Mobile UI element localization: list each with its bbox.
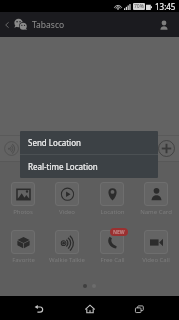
button[interactable]: Back bbox=[27, 297, 51, 320]
button[interactable]: Send Location bbox=[20, 131, 158, 154]
button[interactable]: Voice message bbox=[2, 139, 21, 158]
staticText: Photos bbox=[13, 208, 33, 216]
staticText: Free Call bbox=[100, 256, 125, 264]
staticText: Video bbox=[59, 208, 75, 216]
button[interactable]: Back bbox=[1, 19, 12, 30]
staticText: Tabasco bbox=[32, 19, 65, 31]
staticText: Video Call bbox=[142, 256, 170, 264]
button[interactable]: Video Call bbox=[134, 230, 178, 264]
button[interactable]: Location bbox=[90, 182, 134, 216]
button[interactable]: Favorite bbox=[1, 230, 45, 264]
button[interactable]: Real-time Location bbox=[20, 155, 158, 178]
button[interactable]: Walkie Talkie bbox=[45, 230, 89, 264]
button[interactable]: Contact avatar bbox=[12, 16, 29, 33]
button[interactable]: NEW bbox=[90, 230, 134, 264]
staticText: 70% bbox=[134, 3, 144, 10]
staticText: Favorite bbox=[12, 256, 35, 264]
staticText: Real-time Location bbox=[28, 161, 98, 172]
button[interactable]: Video bbox=[45, 182, 89, 216]
staticText: NEW bbox=[113, 229, 125, 236]
button[interactable]: Chat info bbox=[153, 14, 175, 36]
staticText: Walkie Talkie bbox=[49, 256, 85, 264]
button[interactable]: Name Card bbox=[134, 182, 178, 216]
staticText: Location bbox=[100, 208, 125, 216]
staticText: Send Location bbox=[28, 137, 81, 148]
button[interactable]: Home bbox=[78, 297, 102, 320]
staticText: 13:45 bbox=[155, 1, 176, 12]
button[interactable]: More functions bbox=[156, 138, 177, 159]
button[interactable]: Photos bbox=[1, 182, 45, 216]
staticText: Name Card bbox=[140, 208, 172, 216]
button[interactable]: Recents bbox=[127, 297, 151, 320]
